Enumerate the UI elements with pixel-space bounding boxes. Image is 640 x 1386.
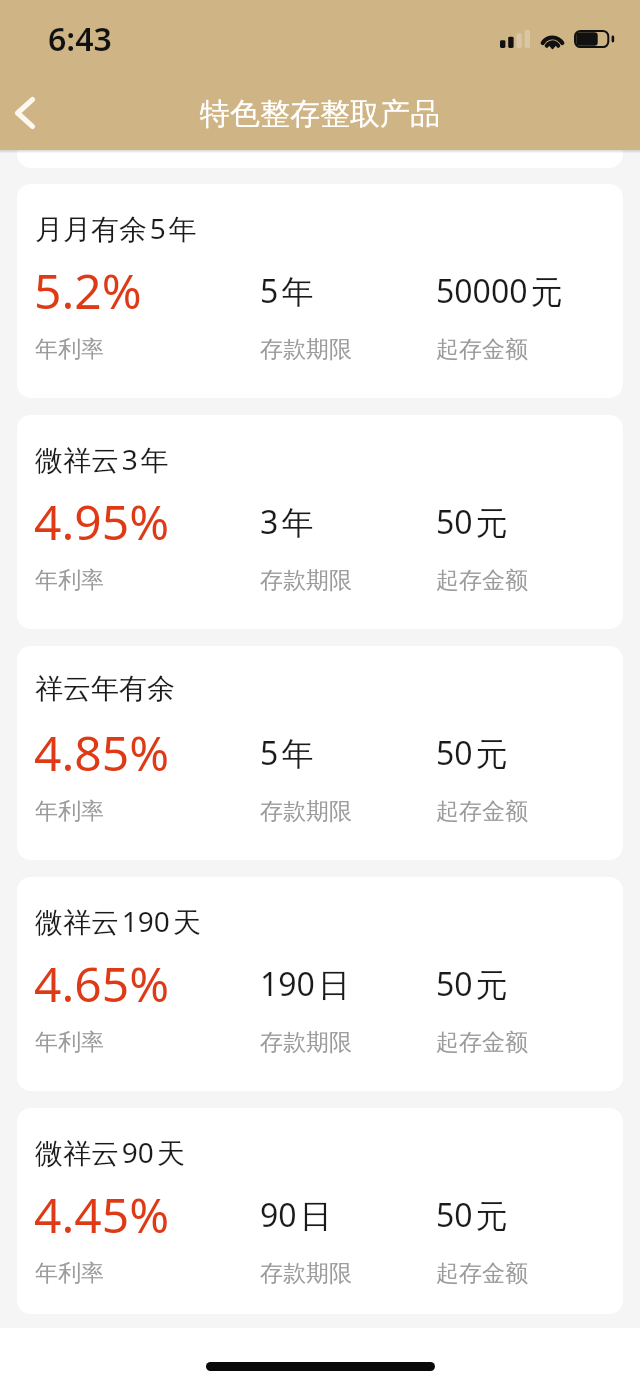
staticText: 起存金额 — [436, 566, 528, 595]
staticText: 微祥云 190 天 — [35, 902, 201, 940]
button[interactable]: Back — [0, 75, 74, 150]
staticText: 50 元 — [436, 1193, 508, 1237]
staticText: 50 元 — [436, 962, 508, 1006]
button[interactable]: 微祥云 90 天 — [17, 1108, 623, 1314]
staticText: 年利率 — [35, 1259, 104, 1288]
staticText: 50000 元 — [436, 269, 563, 313]
staticText: 存款期限 — [260, 797, 352, 826]
staticText: 祥云年有余 — [35, 671, 175, 706]
staticText: 年利率 — [35, 566, 104, 595]
staticText: 存款期限 — [260, 335, 352, 364]
staticText: 4.95% — [34, 489, 170, 554]
button[interactable]: 微祥云 190 天 — [17, 877, 623, 1091]
staticText: 年利率 — [35, 797, 104, 826]
staticText: 起存金额 — [436, 335, 528, 364]
staticText: 4.45% — [34, 1182, 170, 1247]
staticText: 5 年 — [260, 731, 314, 775]
staticText: 年利率 — [35, 335, 104, 364]
button[interactable]: 微祥云 3 年 — [17, 415, 623, 629]
staticText: 月月有余 5 年 — [35, 209, 197, 247]
staticText: 存款期限 — [260, 566, 352, 595]
button[interactable]: 月月有余 5 年 — [17, 184, 623, 398]
staticText: 50 元 — [436, 731, 508, 775]
staticText: 5 年 — [260, 269, 314, 313]
staticText: 年利率 — [35, 1028, 104, 1057]
staticText: 90 日 — [260, 1193, 332, 1237]
staticText: 起存金额 — [436, 1259, 528, 1288]
staticText: 50 元 — [436, 500, 508, 544]
staticText: 4.85% — [34, 720, 170, 785]
staticText: 微祥云 3 年 — [35, 440, 169, 478]
staticText: 微祥云 90 天 — [35, 1133, 185, 1171]
button[interactable]: 祥云年有余 — [17, 646, 623, 860]
staticText: 5.2% — [34, 258, 142, 323]
staticText: 4.65% — [34, 951, 170, 1016]
staticText: 存款期限 — [260, 1259, 352, 1288]
staticText: 起存金额 — [436, 1028, 528, 1057]
staticText: 特色整存整取产品 — [200, 95, 440, 133]
staticText: 6:43 — [48, 17, 112, 61]
staticText: 3 年 — [260, 500, 314, 544]
staticText: 190 日 — [260, 962, 351, 1006]
staticText: 起存金额 — [436, 797, 528, 826]
staticText: 存款期限 — [260, 1028, 352, 1057]
